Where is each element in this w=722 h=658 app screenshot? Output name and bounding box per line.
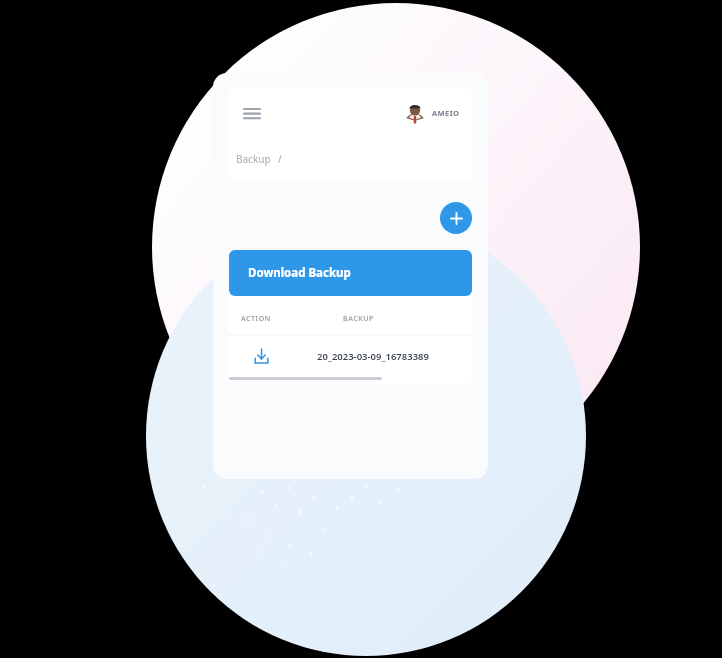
staticText: Download Backup — [248, 265, 351, 281]
button[interactable]: Backup — [236, 152, 271, 166]
button[interactable]: Add backup — [440, 202, 472, 234]
button[interactable]: AMEIO — [404, 102, 460, 124]
button[interactable]: Download Backup — [229, 250, 472, 296]
button[interactable]: Download — [251, 346, 271, 366]
staticText: BACKUP — [343, 314, 374, 324]
button[interactable]: Open navigation menu — [241, 102, 263, 124]
staticText: ACTION — [241, 314, 271, 324]
staticText: AMEIO — [432, 108, 460, 118]
staticText: 20_2023-03-09_16783389 — [317, 350, 429, 363]
staticText: / — [278, 152, 282, 166]
